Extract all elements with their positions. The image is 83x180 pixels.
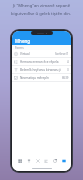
staticText: Virtual <box>20 52 30 56</box>
button[interactable]: Refresh <box>51 157 58 164</box>
button[interactable]: Hemara erenan êce rêpela werkol <box>12 58 71 65</box>
staticText: Belemîk heyîsevu birwewu ji hev xwarbatê… <box>20 68 65 72</box>
staticText: Nezmatiqu mêrepîn ererebûyn <box>20 76 60 80</box>
staticText: bigutvedîse û gelek tiştên din. <box>11 11 72 17</box>
staticText: 8639 <box>62 76 69 80</box>
staticText: Mheng <box>15 38 30 44</box>
staticText: Hemara erenan êce rêpela werkol <box>20 60 65 64</box>
button[interactable]: Align <box>42 157 49 164</box>
button[interactable]: Virtual <box>12 50 71 57</box>
button[interactable]: Image <box>60 157 67 164</box>
button[interactable]: Belemîk heyîsevu birwewu ji hev xwarbatê… <box>12 66 71 73</box>
staticText: Sortlevel 1 <box>55 52 69 56</box>
button[interactable]: Crop <box>34 157 41 164</box>
staticText: Ji "Mheng"an zimanê sepanê <box>13 3 71 9</box>
staticText: Forms <box>15 46 24 50</box>
staticText: 4 <box>67 60 69 64</box>
staticText: 3 <box>67 68 69 72</box>
button[interactable]: Nezmatiqu mêrepîn ererebûyn <box>12 74 71 81</box>
button[interactable]: Grid <box>16 157 23 164</box>
button[interactable]: Pin <box>25 157 32 164</box>
button[interactable]: Mheng <box>12 36 71 45</box>
